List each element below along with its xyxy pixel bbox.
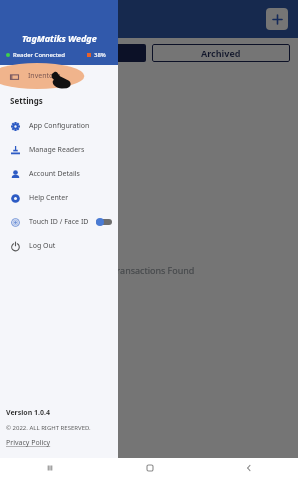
button[interactable]: Inventory [0, 65, 118, 87]
button[interactable]: Active [8, 44, 146, 62]
button[interactable]: Add [266, 8, 288, 30]
staticText: Privacy Policy [6, 438, 51, 448]
staticText: 38% [94, 51, 106, 59]
button[interactable]: Log Out [0, 234, 118, 258]
button[interactable]: Back [199, 458, 298, 477]
button[interactable]: Recents [0, 458, 100, 477]
staticText: Touch ID / Face ID [29, 217, 89, 227]
button[interactable]: Account Details [0, 162, 118, 186]
button[interactable]: Touch ID / Face ID [0, 210, 118, 234]
button[interactable]: Help Center [0, 186, 118, 210]
staticText: Account Details [29, 169, 80, 179]
staticText: Archived [201, 47, 241, 59]
staticText: Manage Readers [29, 145, 85, 155]
staticText: Active [63, 47, 91, 59]
staticText: Inventory [28, 71, 60, 81]
staticText: No Pending Transactions Found [60, 264, 195, 276]
button[interactable]: Manage Readers [0, 138, 118, 162]
staticText: App Configuration [29, 121, 90, 131]
staticText: © 2022. ALL RIGHT RESERVED. [6, 424, 91, 432]
button[interactable]: Home [100, 458, 199, 477]
button[interactable]: App Configuration [0, 114, 118, 138]
button[interactable]: Archived [152, 44, 290, 62]
staticText: Reader Connected [13, 51, 65, 59]
staticText: Log Out [29, 241, 56, 251]
button[interactable]: Privacy Policy [6, 438, 51, 448]
staticText: Settings [10, 95, 43, 106]
staticText: TagMatiks Wedge [22, 32, 97, 44]
button[interactable] [96, 218, 112, 226]
staticText: Version 1.0.4 [6, 408, 51, 418]
staticText: Help Center [29, 193, 69, 203]
